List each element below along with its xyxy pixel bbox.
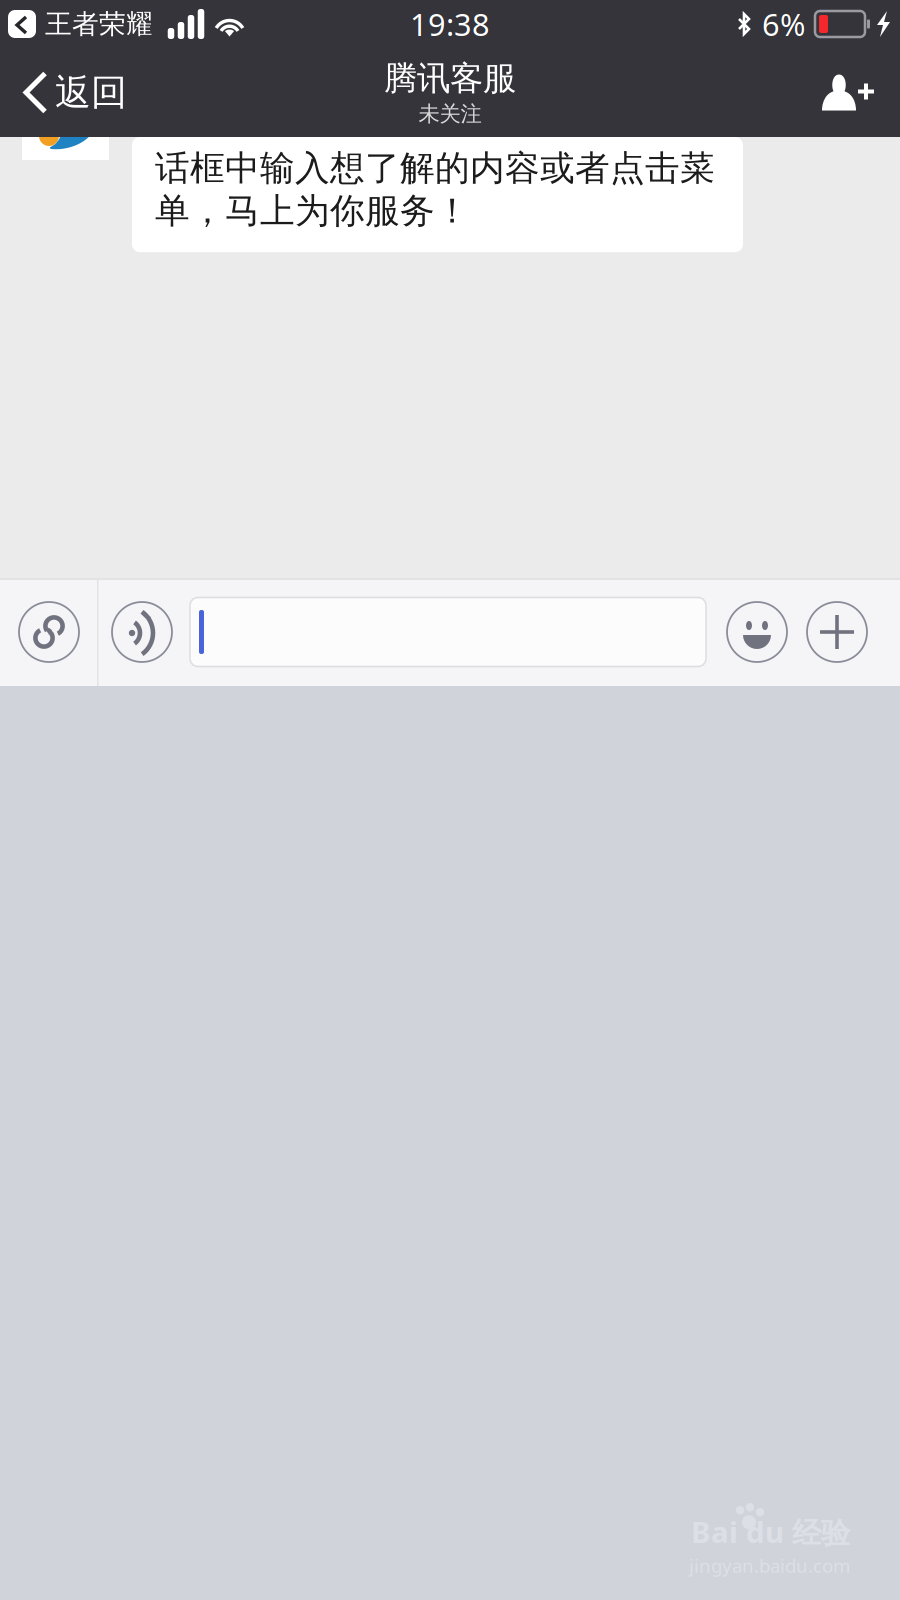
staticText: 6% — [762, 4, 805, 44]
staticText: 话框中输入想了解的内容或者点击菜单，马上为你服务！ — [155, 147, 715, 232]
staticText: 19:38 — [410, 4, 490, 44]
button[interactable]: More — [797, 578, 877, 686]
staticText: 腾讯客服 — [384, 58, 516, 99]
staticText: 返回 — [55, 70, 127, 115]
button[interactable]: Add contact — [800, 48, 900, 137]
button[interactable]: 返回 — [0, 48, 149, 137]
button[interactable]: Mini programs — [0, 578, 98, 686]
staticText: 王者荣耀 — [45, 8, 153, 40]
staticText: Bai du 经验 — [691, 1512, 850, 1551]
button[interactable]: Emoji — [717, 578, 797, 686]
button[interactable]: Back to previous app — [8, 10, 36, 38]
button[interactable]: Voice input — [98, 578, 186, 686]
staticText: 未关注 — [418, 101, 481, 127]
staticText: jingyan.baidu.com — [689, 1553, 850, 1578]
